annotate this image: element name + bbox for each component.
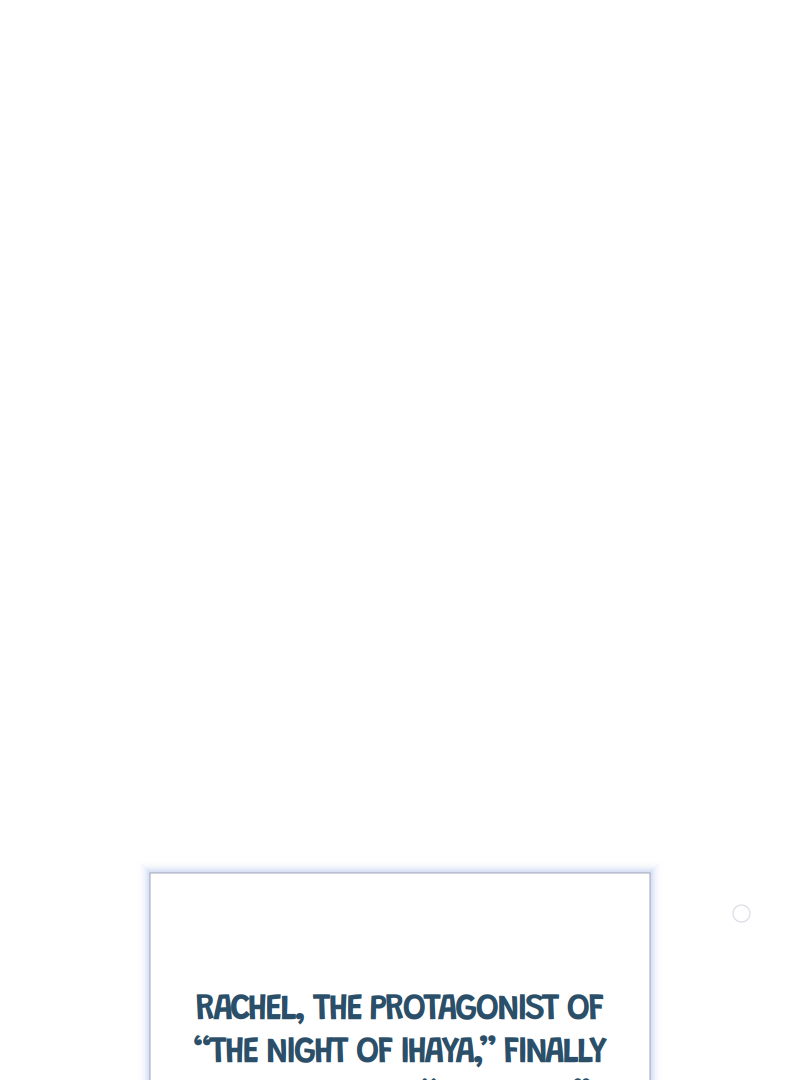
staticText: “THE NIGHT OF IHAYA,” FINALLY [193,1036,607,1072]
staticText: PUBLISHES HER “ROMANCE.” [209,1079,591,1080]
button[interactable]: Toggle reader controls [0,0,800,1080]
button[interactable]: RACHEL, THE PROTAGONIST OF [150,873,650,1080]
staticText: RACHEL, THE PROTAGONIST OF [195,993,605,1029]
